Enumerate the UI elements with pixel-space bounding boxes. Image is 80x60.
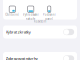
button[interactable]: Vyhledávání	[21, 6, 40, 19]
staticText: Zobrazovat návrhy	[6, 56, 38, 60]
staticText: Vyhledávání	[23, 13, 39, 16]
staticText: nahoře	[26, 17, 36, 21]
button[interactable]: Oblíbené	[3, 6, 21, 19]
staticText: Vybrat zkratky	[6, 29, 31, 35]
button[interactable]: Vybrat zkratky	[3, 25, 77, 38]
button[interactable]: Postranní	[40, 6, 58, 19]
staticText: Rozvržení	[33, 20, 46, 23]
staticText: Postranní	[43, 13, 56, 16]
button[interactable]: Zobrazovat návrhy	[3, 52, 77, 60]
staticText: Oblíbené	[5, 13, 19, 16]
staticText: panel	[45, 17, 53, 21]
